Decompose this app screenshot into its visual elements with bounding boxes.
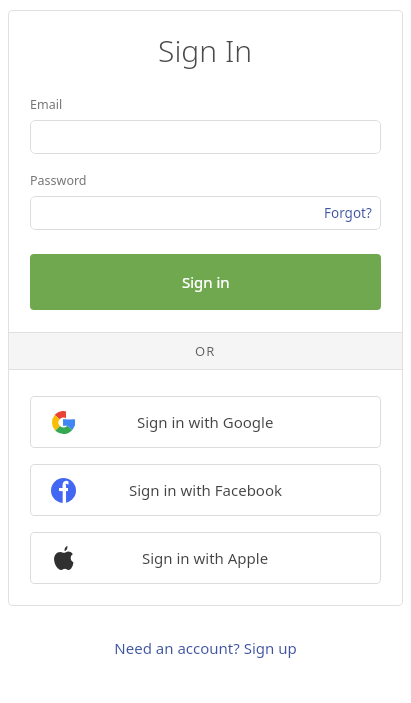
staticText: Sign in with Facebook <box>129 480 283 500</box>
button[interactable]: Sign in <box>30 254 381 310</box>
staticText: Email <box>30 96 63 113</box>
staticText: Sign in with Google <box>137 412 274 432</box>
button[interactable] <box>30 120 381 154</box>
staticText: Sign In <box>158 30 253 71</box>
button[interactable]: Forgot? <box>315 200 381 226</box>
button[interactable]: Sign in with Apple <box>30 532 381 584</box>
button[interactable]: Sign in with Google <box>30 396 381 448</box>
staticText: Sign in with Apple <box>142 548 269 568</box>
staticText: Password <box>30 172 87 189</box>
staticText: Need an account? Sign up <box>114 638 297 658</box>
staticText: Forgot? <box>324 204 372 222</box>
staticText: Sign in <box>182 272 230 292</box>
button[interactable]: Sign in with Facebook <box>30 464 381 516</box>
button[interactable]: Need an account? Sign up <box>102 632 309 664</box>
button[interactable]: Forgot? <box>30 196 381 230</box>
staticText: OR <box>195 342 216 360</box>
